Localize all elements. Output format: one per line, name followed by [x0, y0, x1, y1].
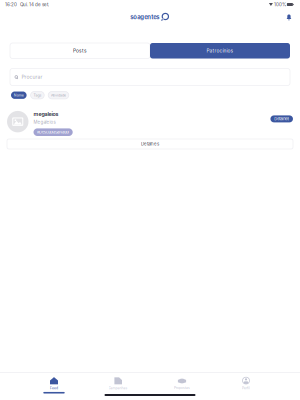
staticText: Megaleios: [33, 119, 55, 125]
button[interactable]: Procurar: [10, 68, 290, 85]
staticText: #DescubraSalvador: [37, 130, 69, 135]
button[interactable]: Tags: [31, 91, 44, 99]
staticText: 100%: [273, 2, 286, 7]
button[interactable]: Patrocínios: [150, 43, 290, 58]
staticText: Atividade: [51, 93, 66, 97]
staticText: Detalhes: [141, 141, 159, 147]
button[interactable]: Detalhes: [7, 139, 293, 149]
button[interactable]: Perfil: [214, 377, 278, 394]
button[interactable]: Propostas: [150, 377, 214, 393]
staticText: Perfil: [242, 386, 250, 390]
button[interactable]: Feed: [22, 377, 86, 393]
button[interactable]: Campanhas: [86, 377, 150, 393]
staticText: sóagentes: [130, 13, 159, 21]
button[interactable]: Notificações: [282, 10, 296, 24]
button[interactable]: Atividade: [48, 91, 69, 99]
button[interactable]: Nome: [11, 91, 27, 99]
staticText: Posts: [73, 48, 87, 54]
staticText: Detalhes: [274, 116, 289, 121]
staticText: 16:20 Qui. 14 de set.: [5, 2, 49, 7]
button[interactable]: Detalhes: [270, 115, 293, 122]
button[interactable]: Posts: [10, 43, 150, 58]
staticText: Propostas: [174, 386, 190, 390]
staticText: Patrocínios: [206, 48, 233, 54]
staticText: megaleios: [33, 111, 58, 117]
staticText: Procurar: [22, 74, 43, 80]
staticText: Tags: [33, 93, 41, 97]
staticText: Feed: [50, 386, 58, 390]
staticText: Campanhas: [108, 386, 127, 390]
staticText: Nome: [14, 93, 24, 97]
